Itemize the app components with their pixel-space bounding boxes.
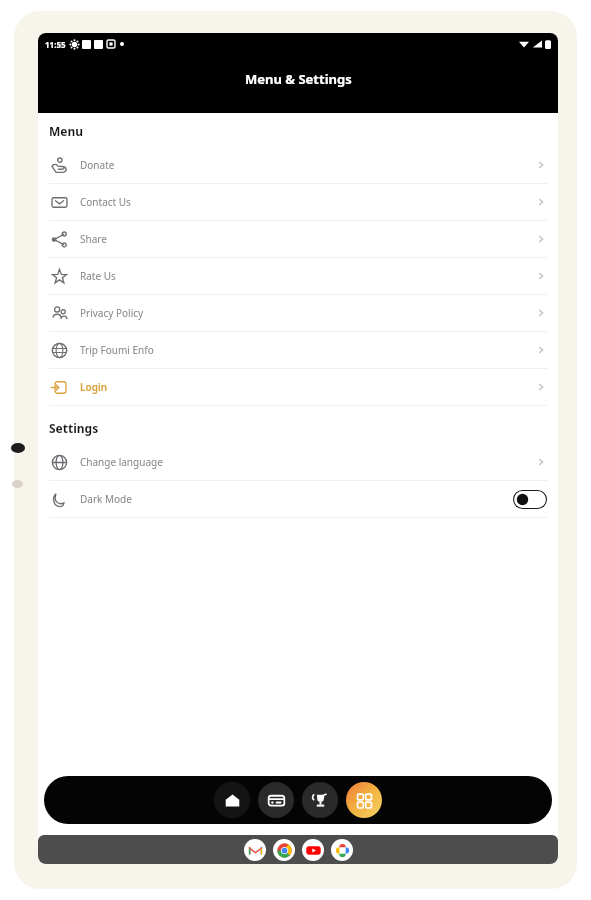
staticText: Rate Us xyxy=(80,269,116,283)
staticText: Privacy Policy xyxy=(80,306,144,320)
button[interactable]: youtube xyxy=(302,839,324,861)
staticText: 11:55 xyxy=(45,39,66,50)
button[interactable]: Change language xyxy=(38,444,558,480)
staticText: Share xyxy=(80,232,107,246)
button[interactable]: photos xyxy=(331,839,353,861)
button[interactable]: Login xyxy=(38,369,558,405)
staticText: Menu & Settings xyxy=(245,70,352,88)
staticText: Dark Mode xyxy=(80,492,132,506)
staticText: Donate xyxy=(80,158,115,172)
button[interactable]: Contact Us xyxy=(38,184,558,220)
button[interactable]: Menu xyxy=(346,782,382,818)
button[interactable]: Donate xyxy=(38,147,558,183)
staticText: Change language xyxy=(80,455,163,469)
button[interactable]: Home xyxy=(214,782,250,818)
staticText: Contact Us xyxy=(80,195,131,209)
button[interactable]: Dark Mode xyxy=(38,481,558,517)
button[interactable]: chrome xyxy=(273,839,295,861)
button[interactable]: Trip Foumi Enfo xyxy=(38,332,558,368)
staticText: Trip Foumi Enfo xyxy=(80,343,154,357)
button[interactable]: gmail xyxy=(244,839,266,861)
button[interactable]: Rate Us xyxy=(38,258,558,294)
button[interactable]: Rewards xyxy=(302,782,338,818)
staticText: Settings xyxy=(49,420,99,436)
button[interactable]: Share xyxy=(38,221,558,257)
button[interactable]: Wallet xyxy=(258,782,294,818)
staticText: Menu xyxy=(49,123,84,139)
button[interactable]: Privacy Policy xyxy=(38,295,558,331)
button[interactable]: Dark Mode toggle xyxy=(513,490,547,509)
staticText: Login xyxy=(80,380,108,394)
